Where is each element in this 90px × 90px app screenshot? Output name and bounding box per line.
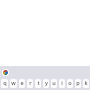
staticText: q [3,79,7,86]
staticText: i [61,79,63,86]
button[interactable]: e [19,79,25,88]
staticText: o [68,79,72,86]
button[interactable]: q [1,79,8,88]
button[interactable]: Google [2,69,9,76]
button[interactable]: o [67,79,73,88]
button[interactable]: k [83,79,89,88]
staticText: t [37,79,40,86]
staticText: p [76,79,80,86]
button[interactable]: i [59,79,65,88]
staticText: w [11,79,16,86]
button[interactable]: w [10,79,17,88]
staticText: y [45,79,48,86]
button[interactable]: p [75,79,81,88]
button[interactable]: t [35,79,41,88]
staticText: u [52,79,56,86]
staticText: r [29,79,32,86]
button[interactable]: y [43,79,49,88]
button[interactable]: u [51,79,57,88]
button[interactable]: r [27,79,33,88]
staticText: k [84,79,88,86]
staticText: e [20,79,24,86]
